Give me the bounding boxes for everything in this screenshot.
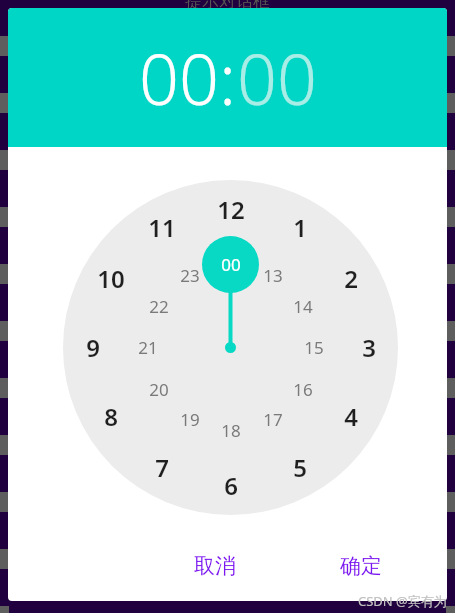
button[interactable]: 2 [344, 262, 358, 295]
button[interactable]: 19 [180, 408, 200, 431]
button[interactable]: 20 [149, 378, 169, 401]
button[interactable]: 12 [217, 193, 245, 226]
staticText: 提示对话框 [185, 0, 270, 12]
button[interactable]: 18 [221, 419, 241, 442]
staticText: : [219, 30, 237, 125]
button[interactable]: 00 [139, 30, 219, 125]
button[interactable]: 17 [263, 408, 283, 431]
button[interactable]: 10 [97, 262, 125, 295]
button[interactable]: 21 [138, 336, 158, 359]
button[interactable]: 3 [362, 331, 376, 364]
button[interactable]: 8 [104, 400, 118, 433]
staticText: 确定 [340, 553, 382, 579]
button[interactable]: 4 [344, 400, 358, 433]
button[interactable]: 00 [221, 253, 241, 276]
button[interactable]: 1 [293, 211, 307, 244]
button[interactable]: 6 [224, 469, 238, 502]
button[interactable]: 9 [86, 331, 100, 364]
staticText: CSDN @宾有为 [358, 592, 447, 610]
button[interactable]: 00 [237, 30, 317, 125]
button[interactable]: 7 [155, 451, 169, 484]
button[interactable]: 23 [180, 264, 200, 287]
button[interactable]: 16 [293, 378, 313, 401]
button[interactable]: 15 [304, 336, 324, 359]
button[interactable]: 11 [148, 211, 176, 244]
staticText: 取消 [194, 553, 236, 579]
button[interactable]: 14 [293, 295, 313, 318]
button[interactable]: 13 [263, 264, 283, 287]
button[interactable]: 5 [293, 451, 307, 484]
button[interactable]: 取消 [184, 547, 246, 585]
button[interactable]: 确定 [330, 547, 392, 585]
button[interactable]: 22 [149, 295, 169, 318]
